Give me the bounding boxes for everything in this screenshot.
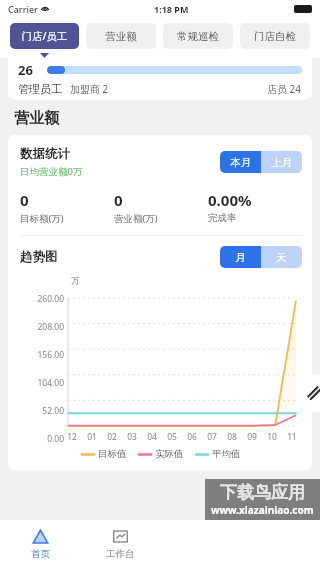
staticText: Carrier <box>8 3 38 15</box>
staticText: 门店自检 <box>254 30 296 43</box>
staticText: 07 <box>202 431 222 443</box>
staticText: 本月 <box>230 156 251 169</box>
staticText: 月 <box>235 251 246 264</box>
staticText: 营业额(万) <box>114 212 158 225</box>
staticText: 0 <box>20 190 29 210</box>
button[interactable]: 营业额 <box>86 23 156 49</box>
staticText: www.xiazainiao.com <box>211 503 314 517</box>
staticText: 目标额(万) <box>20 212 64 225</box>
staticText: 目标值 <box>98 448 127 460</box>
staticText: 天 <box>276 251 287 264</box>
button[interactable]: 门店/员工 <box>10 23 79 49</box>
staticText: 0.00 <box>20 433 64 445</box>
staticText: 0 <box>114 190 123 210</box>
staticText: 下载鸟应用 <box>220 482 305 503</box>
staticText: 趋势图 <box>20 249 58 265</box>
staticText: 门店/员工 <box>21 29 68 43</box>
staticText: 26 <box>18 61 33 79</box>
staticText: 1:18 PM <box>154 3 189 15</box>
staticText: 店员 24 <box>267 82 302 96</box>
button[interactable]: 门店自检 <box>240 23 310 49</box>
staticText: 数据统计 <box>20 146 70 162</box>
button[interactable]: 本月 <box>220 151 261 173</box>
staticText: 08 <box>222 431 242 443</box>
staticText: 05 <box>162 431 182 443</box>
staticText: 01 <box>82 431 102 443</box>
staticText: 11 <box>282 431 302 443</box>
staticText: 0.00% <box>208 190 252 210</box>
staticText: 管理员工 <box>18 82 62 96</box>
staticText: 208.00 <box>20 321 64 333</box>
staticText: 02 <box>102 431 122 443</box>
button[interactable]: 天 <box>261 246 302 268</box>
staticText: 10 <box>262 431 282 443</box>
staticText: 52.00 <box>20 405 64 417</box>
button[interactable]: 上月 <box>261 151 302 173</box>
staticText: 营业额 <box>14 109 59 128</box>
staticText: 日均营业额0万 <box>20 165 83 178</box>
staticText: 260.00 <box>20 293 64 305</box>
button[interactable]: 首页 <box>0 520 80 568</box>
staticText: 万 <box>71 276 80 287</box>
button[interactable]: 编辑 <box>295 374 320 412</box>
staticText: 工作台 <box>106 548 135 560</box>
staticText: 实际值 <box>155 448 184 460</box>
staticText: 156.00 <box>20 349 64 361</box>
staticText: 12 <box>62 431 82 443</box>
button[interactable]: 工作台 <box>80 520 160 568</box>
staticText: 104.00 <box>20 377 64 389</box>
staticText: 04 <box>142 431 162 443</box>
staticText: 03 <box>122 431 142 443</box>
staticText: 平均值 <box>212 448 241 460</box>
staticText: 营业额 <box>105 30 137 43</box>
staticText: 加盟商 2 <box>70 82 109 96</box>
staticText: 06 <box>182 431 202 443</box>
staticText: 09 <box>242 431 262 443</box>
staticText: 常规巡检 <box>177 30 219 43</box>
staticText: 首页 <box>31 548 50 560</box>
staticText: 上月 <box>271 156 292 169</box>
button[interactable]: 月 <box>220 246 261 268</box>
button[interactable]: 常规巡检 <box>163 23 233 49</box>
staticText: 完成率 <box>208 212 237 224</box>
